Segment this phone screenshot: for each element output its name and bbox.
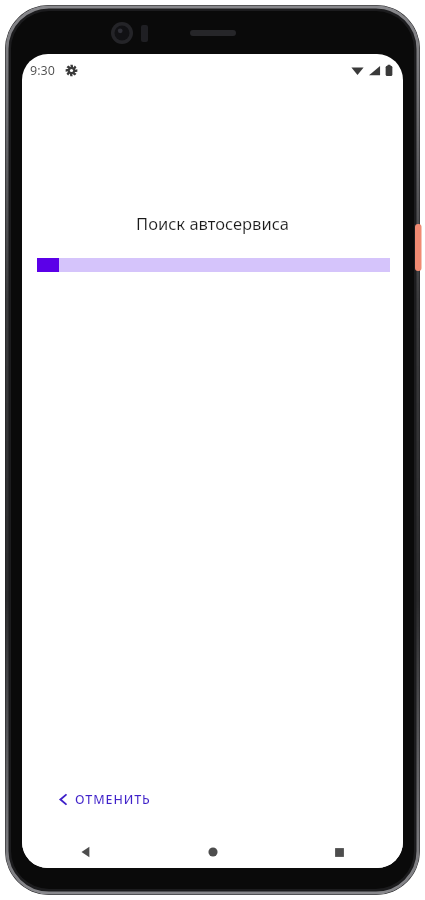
button[interactable]: ОТМЕНИТЬ [50, 785, 159, 814]
staticText: ОТМЕНИТЬ [75, 791, 151, 808]
staticText: 9:30 [30, 62, 55, 79]
button[interactable]: Recent apps [276, 836, 403, 868]
button[interactable]: Home [149, 836, 276, 868]
staticText: Поиск автосервиса [22, 212, 403, 234]
button[interactable]: Back [22, 836, 149, 868]
